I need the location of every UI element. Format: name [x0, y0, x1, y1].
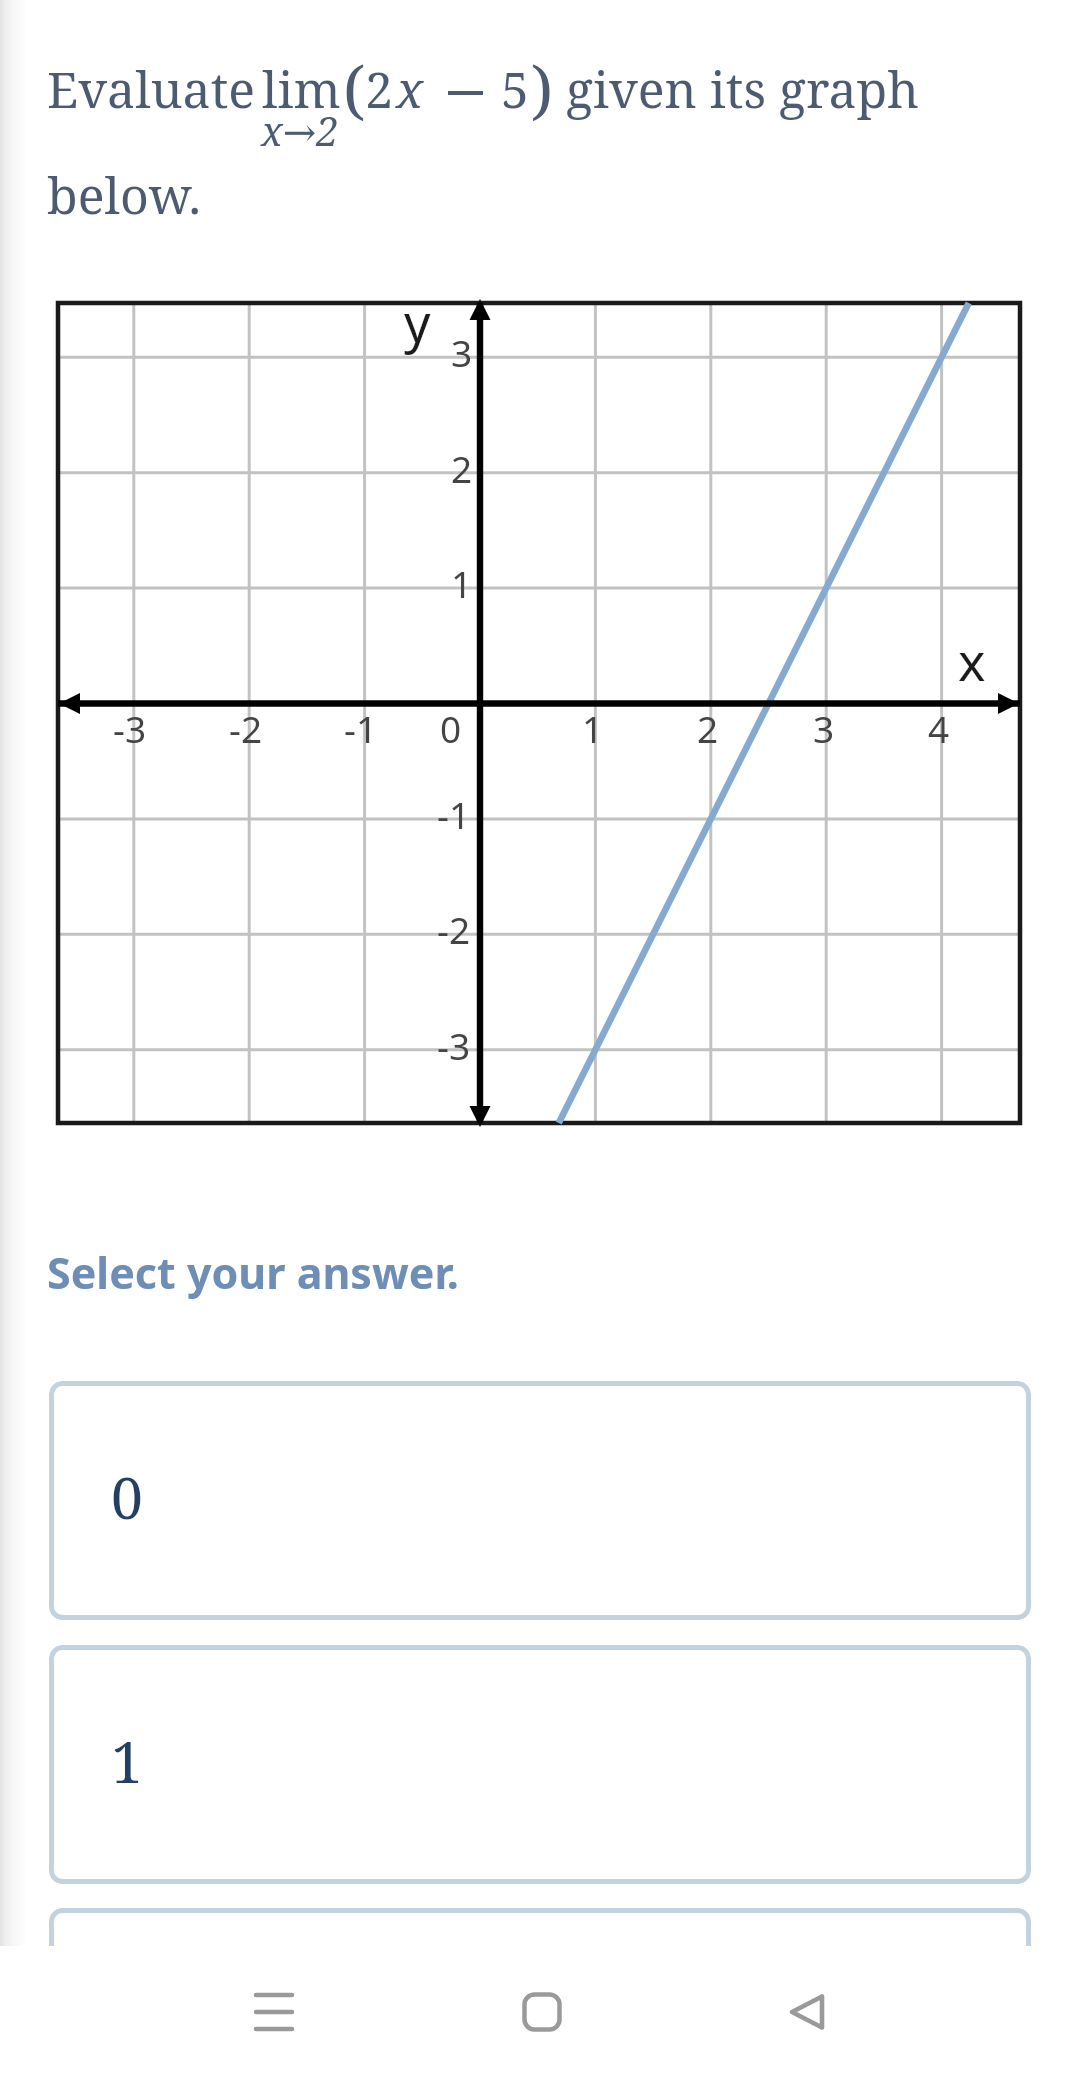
staticText: ): [531, 45, 554, 132]
staticText: 3: [813, 703, 835, 753]
button[interactable]: Recent apps: [208, 1946, 340, 2078]
staticText: -2: [437, 904, 471, 954]
staticText: 3: [451, 327, 473, 377]
staticText: lim: [262, 55, 341, 123]
staticText: Select your answer.: [47, 1243, 459, 1302]
button[interactable]: 1: [49, 1645, 1031, 1884]
staticText: 1: [451, 558, 473, 608]
staticText: Evaluate: [47, 55, 255, 123]
staticText: 2: [365, 55, 393, 123]
button[interactable]: Back: [741, 1946, 873, 2078]
staticText: x→2: [261, 103, 339, 157]
staticText: -2: [229, 703, 263, 753]
staticText: 1: [111, 1722, 143, 1800]
staticText: -3: [437, 1020, 471, 1070]
staticText: y: [404, 286, 431, 357]
staticText: 5: [501, 55, 529, 123]
button[interactable]: 0: [49, 1381, 1031, 1620]
staticText: below.: [47, 161, 201, 229]
staticText: -3: [113, 703, 147, 753]
staticText: x: [396, 55, 424, 123]
staticText: 2: [697, 703, 719, 753]
button[interactable]: 2: [49, 1908, 1031, 1946]
staticText: given its graph: [566, 55, 920, 123]
staticText: (: [343, 45, 366, 132]
staticText: 1: [582, 703, 604, 753]
staticText: 0: [111, 1458, 143, 1536]
staticText: 2: [451, 443, 473, 493]
staticText: 0: [440, 703, 462, 753]
staticText: 4: [928, 703, 950, 753]
staticText: x: [958, 625, 986, 696]
button[interactable]: Home: [476, 1946, 608, 2078]
staticText: -1: [344, 703, 378, 753]
staticText: -1: [437, 789, 471, 839]
